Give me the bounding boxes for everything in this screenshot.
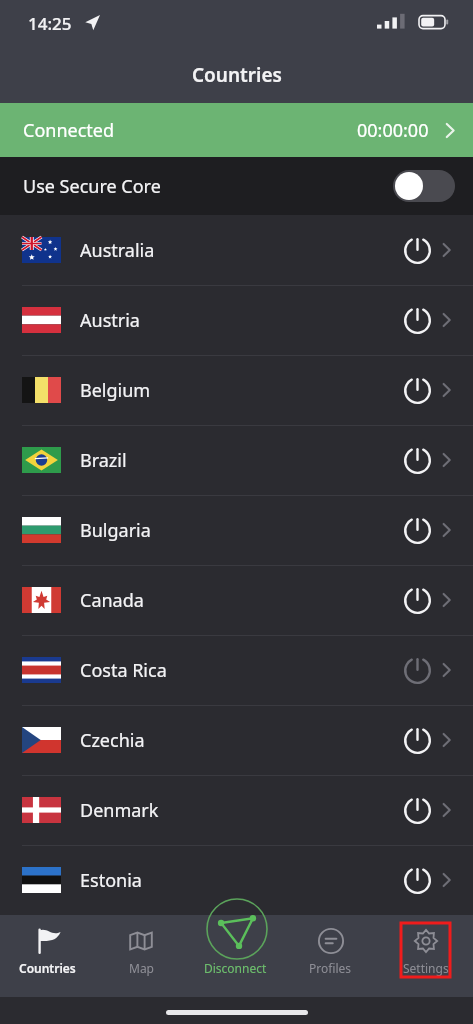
staticText: Profiles xyxy=(309,960,352,976)
staticText: Map xyxy=(129,960,154,976)
button[interactable]: Connect to Canada xyxy=(397,580,437,620)
button[interactable]: Estonia xyxy=(0,845,473,915)
button[interactable]: Czechia xyxy=(0,705,473,775)
button[interactable]: Canada xyxy=(0,565,473,635)
button[interactable]: Costa Rica xyxy=(0,635,473,705)
button[interactable]: Connect to Denmark xyxy=(397,790,437,830)
button[interactable]: Countries xyxy=(0,915,94,997)
button[interactable]: Connect to Costa Rica xyxy=(397,650,437,690)
staticText: 00:00:00 xyxy=(357,118,429,143)
button[interactable]: Austria xyxy=(0,285,473,355)
staticText: Bulgaria xyxy=(80,518,151,543)
button[interactable]: Australia xyxy=(0,215,473,285)
staticText: Belgium xyxy=(80,378,151,403)
button[interactable]: Denmark xyxy=(0,775,473,845)
staticText: Costa Rica xyxy=(80,658,167,683)
button[interactable]: Use Secure Core xyxy=(0,157,473,215)
staticText: Canada xyxy=(80,588,144,613)
button[interactable]: Disconnect xyxy=(188,915,283,997)
staticText: Brazil xyxy=(80,448,127,473)
staticText: Connected xyxy=(23,118,115,143)
staticText: Countries xyxy=(19,960,76,976)
staticText: Denmark xyxy=(80,798,159,823)
staticText: Czechia xyxy=(80,728,145,753)
button[interactable]: Connect to Belgium xyxy=(397,370,437,410)
staticText: Settings xyxy=(403,960,449,976)
button[interactable]: Connect to Estonia xyxy=(397,860,437,900)
button[interactable]: Settings xyxy=(378,915,473,997)
staticText: 14:25 xyxy=(28,12,72,35)
staticText: Estonia xyxy=(80,868,142,893)
button[interactable]: Map xyxy=(94,915,188,997)
button[interactable]: Profiles xyxy=(283,915,378,997)
button[interactable]: Belgium xyxy=(0,355,473,425)
staticText: Countries xyxy=(192,62,282,88)
button[interactable]: Connect to Bulgaria xyxy=(397,510,437,550)
button[interactable]: Brazil xyxy=(0,425,473,495)
button[interactable]: Connect to Australia xyxy=(397,230,437,270)
button[interactable]: Connect to Austria xyxy=(397,300,437,340)
staticText: Australia xyxy=(80,238,155,263)
staticText: Disconnect xyxy=(204,960,267,976)
staticText: Austria xyxy=(80,308,140,333)
staticText: Use Secure Core xyxy=(23,174,161,199)
button[interactable]: Connect to Czechia xyxy=(397,720,437,760)
button[interactable]: Connected xyxy=(0,103,473,157)
button[interactable]: Connect to Brazil xyxy=(397,440,437,480)
button[interactable]: Bulgaria xyxy=(0,495,473,565)
button[interactable]: Disconnect xyxy=(206,898,268,960)
